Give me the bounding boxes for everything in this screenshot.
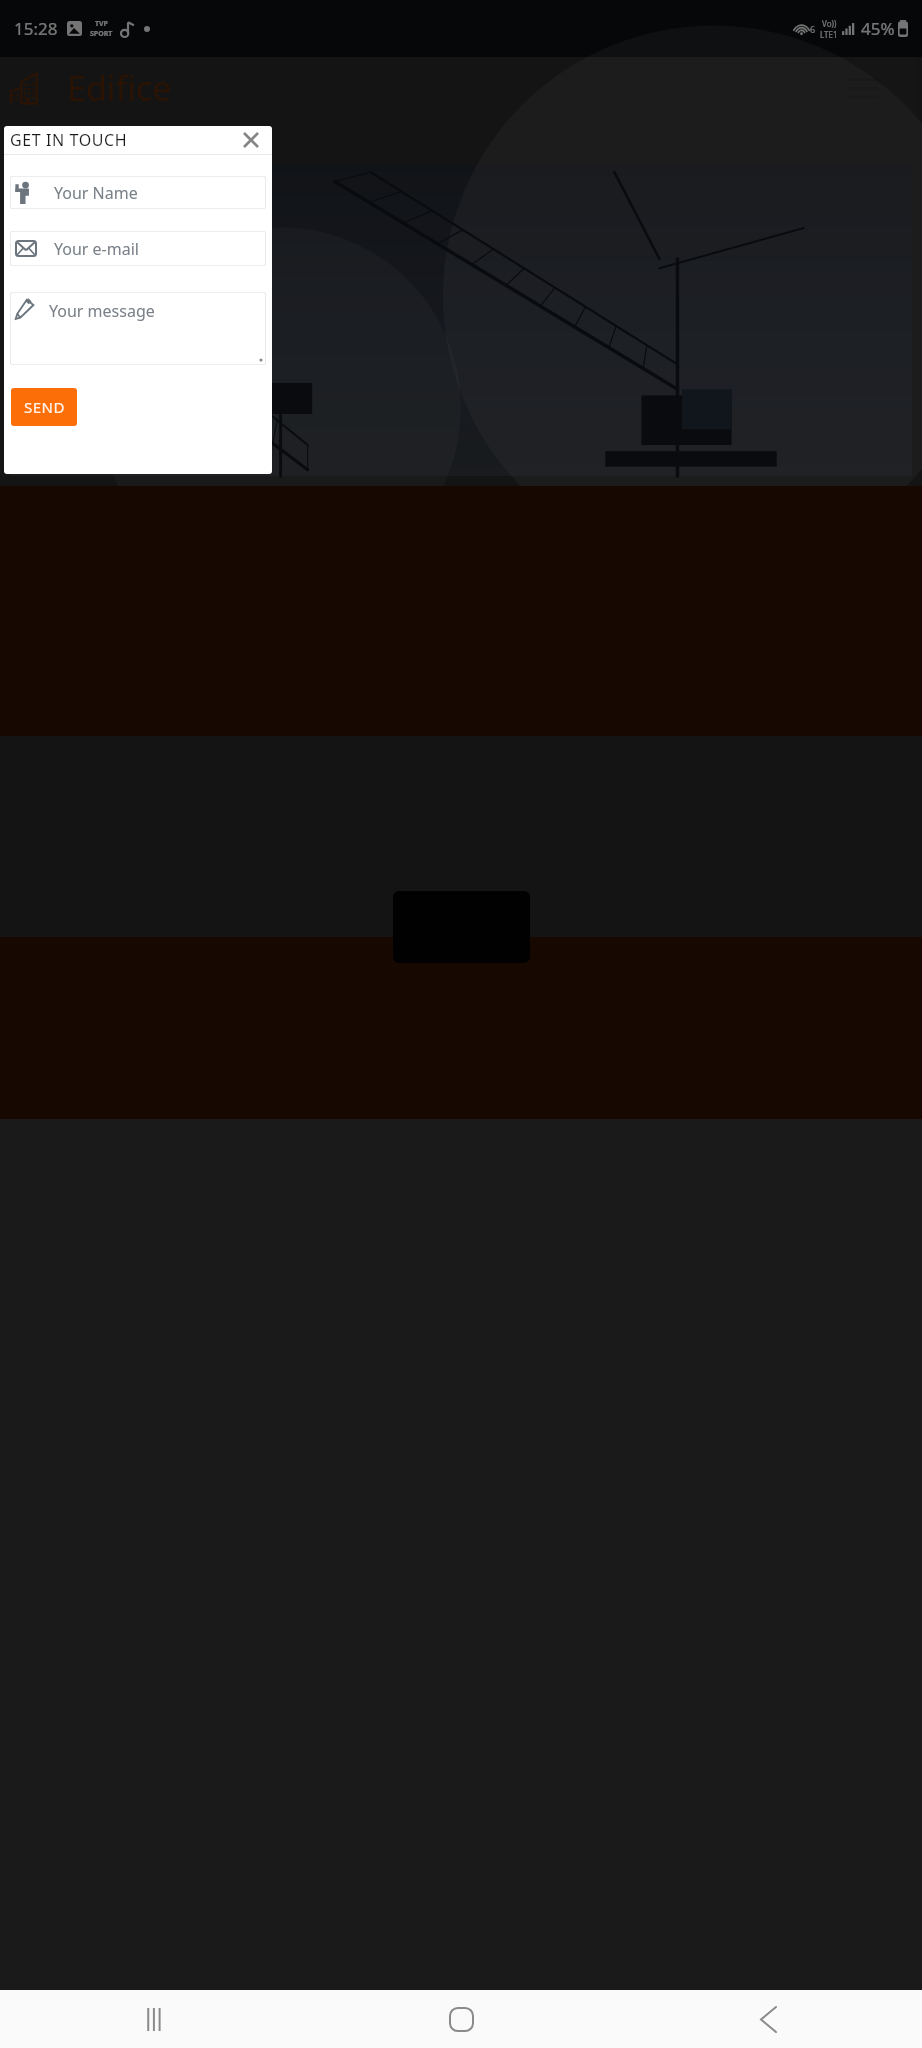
button[interactable]: SEND xyxy=(11,388,77,426)
staticText: LTE1 xyxy=(820,29,838,40)
staticText: Your message xyxy=(49,300,155,322)
button[interactable]: Menu xyxy=(812,57,915,119)
staticText: 45% xyxy=(861,17,895,40)
staticText: 15:28 xyxy=(14,17,58,40)
staticText: Your e-mail xyxy=(54,238,139,260)
staticText: GET IN TOUCH xyxy=(10,129,128,151)
button[interactable]: Your e-mail xyxy=(10,231,266,266)
staticText: Vo)) xyxy=(822,18,837,29)
button[interactable]: Your message xyxy=(10,292,266,365)
staticText: Your Name xyxy=(54,182,138,204)
staticText: 6 xyxy=(810,23,816,35)
staticText: Edifice xyxy=(67,65,172,111)
staticText: SPORT xyxy=(90,29,113,39)
button[interactable]: Recents xyxy=(121,1990,187,2048)
staticText: SEND xyxy=(24,397,65,417)
button[interactable]: Home xyxy=(428,1990,494,2048)
staticText: TVP xyxy=(95,19,108,29)
button[interactable]: Back xyxy=(735,1990,801,2048)
button[interactable]: Your Name xyxy=(10,176,266,209)
button[interactable]: Close xyxy=(234,126,268,154)
